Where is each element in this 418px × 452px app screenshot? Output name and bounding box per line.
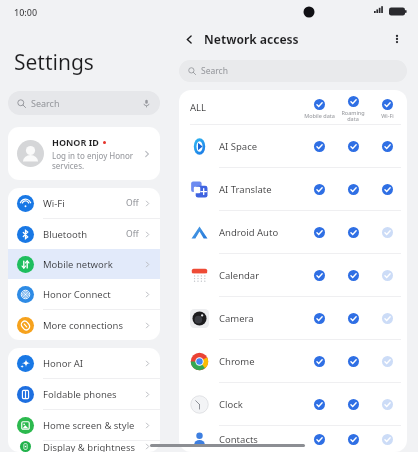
staticText: Foldable phones — [43, 388, 144, 401]
staticText: Mobile data — [304, 112, 335, 119]
staticText: Display & brightness — [43, 441, 144, 452]
button[interactable]: ALL — [179, 90, 407, 124]
button[interactable]: HONOR ID — [8, 127, 160, 180]
button[interactable]: Home screen & style — [8, 410, 160, 440]
staticText: ALL — [190, 101, 302, 114]
staticText: Network access — [204, 31, 388, 47]
staticText: Wi-Fi — [43, 197, 126, 210]
button[interactable]: Back — [180, 30, 198, 48]
button[interactable]: Wi-Fi — [8, 188, 160, 218]
staticText: Log in to enjoy Honor services. — [52, 150, 134, 171]
button[interactable]: AI Space — [179, 125, 407, 167]
staticText: Contacts — [219, 433, 302, 446]
staticText: Home screen & style — [43, 419, 144, 432]
staticText: Clock — [219, 398, 302, 411]
staticText: Off — [126, 228, 139, 240]
button[interactable]: Clock — [179, 383, 407, 425]
staticText: Roaming data — [341, 109, 365, 123]
button[interactable]: Bluetooth — [8, 219, 160, 249]
button[interactable]: Calendar — [179, 254, 407, 296]
staticText: 10:00 — [14, 6, 38, 18]
button[interactable]: Chrome — [179, 340, 407, 382]
staticText: Honor Connect — [43, 288, 144, 301]
staticText: Android Auto — [219, 226, 302, 239]
staticText: AI Translate — [219, 183, 302, 196]
button[interactable]: More connections — [8, 310, 160, 340]
staticText: More connections — [43, 319, 144, 332]
button[interactable]: Contacts — [179, 426, 407, 452]
staticText: Search — [31, 97, 60, 109]
staticText: Camera — [219, 312, 302, 325]
button[interactable]: More options — [388, 30, 406, 48]
button[interactable]: Mobile network — [8, 249, 160, 279]
button[interactable]: Honor AI — [8, 348, 160, 378]
button[interactable]: Honor Connect — [8, 279, 160, 309]
staticText: Settings — [14, 48, 94, 77]
staticText: AI Space — [219, 140, 302, 153]
staticText: Mobile network — [43, 258, 144, 271]
button[interactable]: Camera — [179, 297, 407, 339]
staticText: Search — [201, 65, 228, 77]
staticText: HONOR ID — [52, 136, 99, 148]
button[interactable]: Search — [179, 60, 407, 82]
button[interactable]: Foldable phones — [8, 379, 160, 409]
button[interactable]: Search — [8, 91, 160, 115]
staticText: Chrome — [219, 355, 302, 368]
staticText: Wi-Fi — [381, 112, 394, 119]
button[interactable]: Android Auto — [179, 211, 407, 253]
staticText: Honor AI — [43, 357, 144, 370]
staticText: Bluetooth — [43, 228, 126, 241]
button[interactable]: Display & brightness — [8, 441, 160, 452]
button[interactable]: AI Translate — [179, 168, 407, 210]
staticText: Calendar — [219, 269, 302, 282]
staticText: Off — [126, 197, 139, 209]
